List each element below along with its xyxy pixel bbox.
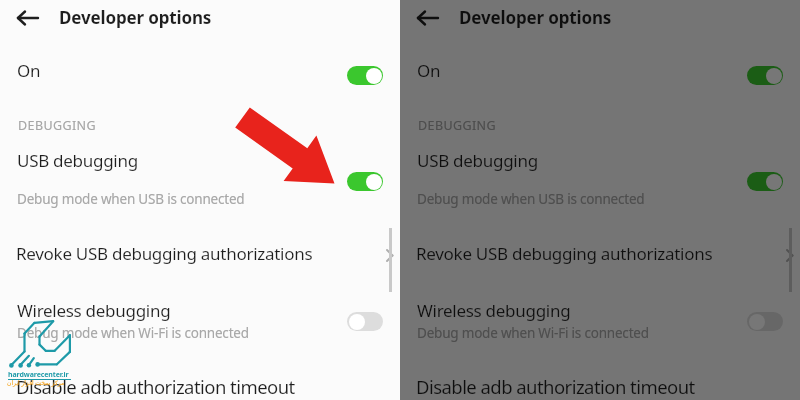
button[interactable] [747, 312, 783, 331]
button[interactable] [417, 11, 439, 25]
button[interactable]: hardwarecenter.ir [8, 370, 69, 380]
staticText: Revoke USB debugging authorizations [16, 242, 313, 265]
staticText: Disable adb authorization timeout [416, 374, 695, 399]
staticText: Debug mode when Wi-Fi is connected [17, 324, 249, 342]
button[interactable] [747, 172, 783, 191]
staticText: Debug mode when USB is connected [417, 190, 645, 208]
button[interactable] [17, 11, 39, 25]
staticText: On [417, 59, 441, 82]
button[interactable] [347, 172, 383, 191]
staticText: DEBUGGING [18, 117, 96, 134]
button[interactable] [747, 66, 783, 85]
staticText: Developer options [459, 6, 612, 29]
staticText: Wireless debugging [417, 299, 571, 322]
staticText: Revoke USB debugging authorizations [416, 242, 713, 265]
staticText: USB debugging [17, 149, 138, 172]
staticText: Developer options [59, 6, 212, 29]
staticText: Disable adb authorization timeout [16, 374, 295, 399]
staticText: DEBUGGING [418, 117, 496, 134]
button[interactable] [347, 66, 383, 85]
staticText: Wireless debugging [17, 299, 171, 322]
staticText: Debug mode when USB is connected [17, 190, 245, 208]
staticText: USB debugging [417, 149, 538, 172]
staticText: Debug mode when Wi-Fi is connected [417, 324, 649, 342]
button[interactable] [347, 312, 383, 331]
staticText: مركز سخت افزار ایران [7, 379, 65, 387]
staticText: On [17, 59, 41, 82]
